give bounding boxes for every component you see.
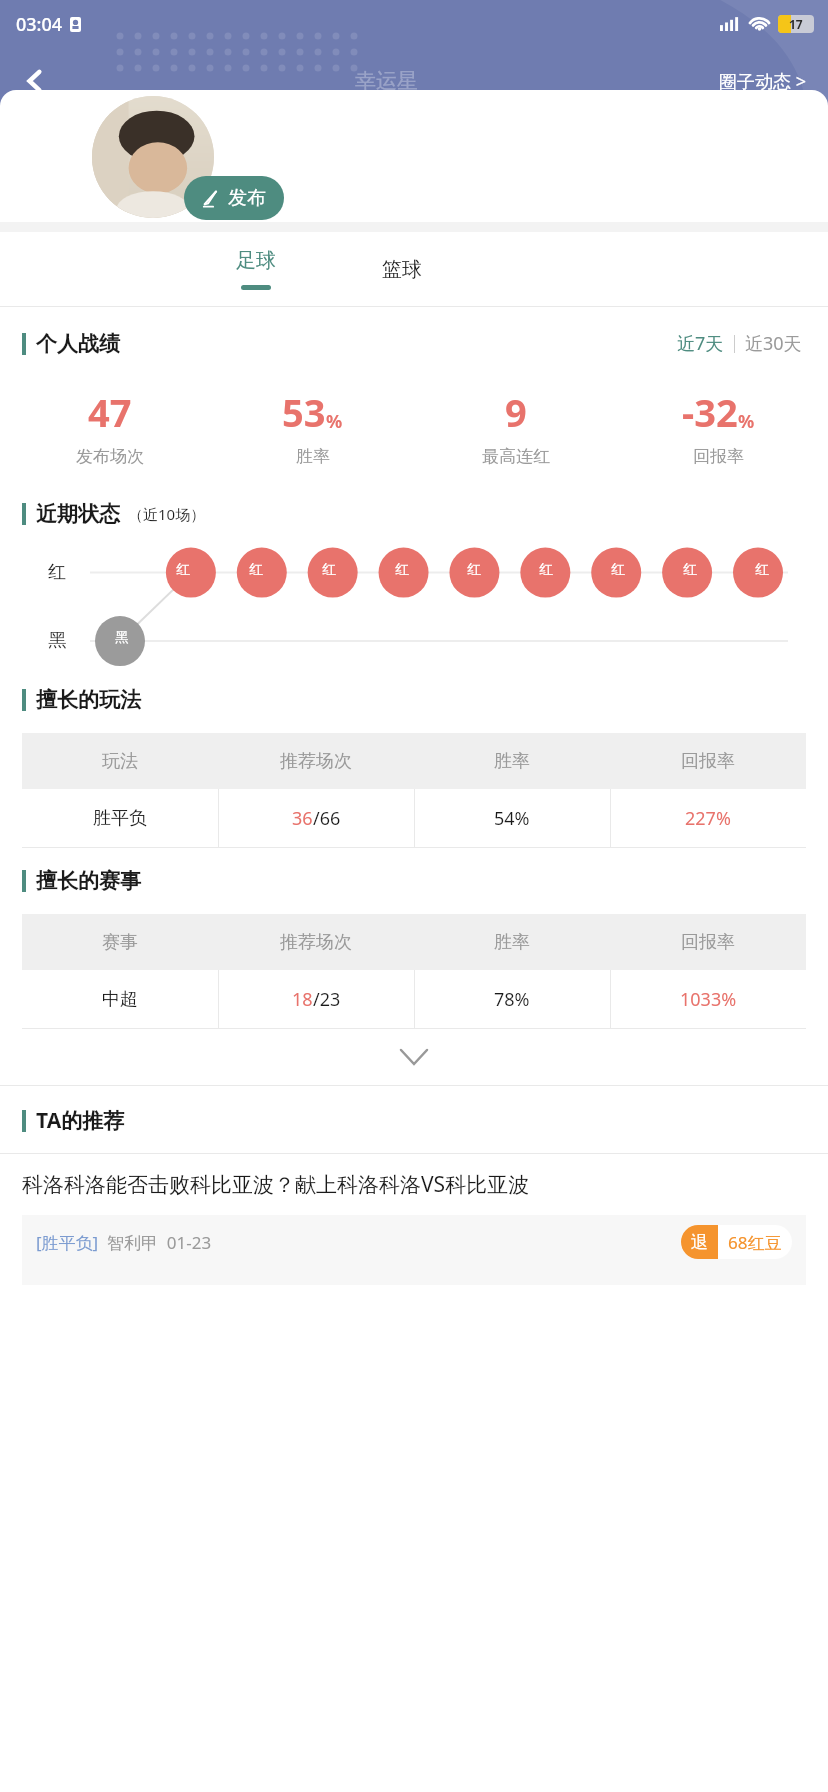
staticText: 近期状态 [36, 501, 120, 527]
button[interactable]: 近7天 [673, 327, 728, 360]
staticText: 擅长的赛事 [36, 868, 141, 894]
staticText: 退 [691, 1232, 708, 1253]
staticText: 推荐场次 [218, 931, 414, 954]
button[interactable]: 近30天 [741, 327, 806, 360]
staticText: 篮球 [382, 257, 422, 282]
button[interactable]: 科洛科洛能否击败科比亚波？献上科洛科洛VS科比亚波 [0, 1154, 828, 1301]
staticText: 发布场次 [76, 446, 144, 467]
staticText: 发布 [228, 186, 266, 210]
staticText: 红 [683, 561, 697, 579]
staticText: 近7天 [677, 331, 724, 356]
staticText: 17 [789, 16, 803, 32]
staticText: 54% [494, 806, 530, 831]
staticText: 红 [322, 561, 336, 579]
staticText: % [326, 409, 343, 434]
button[interactable]: 圈子动态 > [715, 65, 810, 98]
staticText: 赛事 [22, 931, 218, 954]
staticText: -32 [682, 386, 738, 438]
staticText: 最高连红 [482, 446, 550, 467]
staticText: 68红豆 [728, 1231, 782, 1254]
staticText: 红 [48, 561, 66, 584]
staticText: 红 [611, 561, 625, 579]
staticText: 红 [395, 561, 409, 579]
staticText: 黑 [48, 629, 66, 652]
staticText: 胜率 [414, 931, 610, 954]
staticText: % [738, 409, 755, 434]
staticText: 胜率 [296, 446, 330, 467]
staticText: 红 [755, 561, 769, 579]
staticText: 227% [685, 806, 731, 831]
staticText: 78% [494, 987, 530, 1012]
staticText: 科洛科洛能否击败科比亚波？献上科洛科洛VS科比亚波 [22, 1170, 530, 1199]
staticText: 胜率 [414, 750, 610, 773]
staticText: 红 [176, 561, 190, 579]
staticText: 玩法 [22, 750, 218, 773]
staticText: 黑 [115, 629, 129, 647]
staticText: 53 [282, 386, 326, 438]
staticText: 红 [539, 561, 553, 579]
staticText: 红 [249, 561, 263, 579]
button[interactable]: 展开更多 [0, 1029, 828, 1085]
staticText: 胜平负 [93, 807, 147, 830]
staticText: 回报率 [610, 931, 806, 954]
button[interactable]: 返回 [12, 58, 58, 104]
staticText: 推荐场次 [218, 750, 414, 773]
staticText: 擅长的玩法 [36, 687, 141, 713]
staticText: 智利甲 01-23 [107, 1231, 212, 1254]
staticText: [胜平负] [36, 1231, 99, 1254]
staticText: 36 [292, 806, 313, 831]
staticText: 47 [88, 386, 132, 438]
staticText: 红 [467, 561, 481, 579]
button[interactable]: 篮球 [368, 251, 436, 288]
staticText: 回报率 [693, 446, 744, 467]
button[interactable]: 发布 [184, 176, 284, 220]
staticText: 18 [292, 987, 313, 1012]
staticText: /23 [313, 987, 341, 1012]
staticText: TA的推荐 [36, 1106, 125, 1135]
staticText: 中超 [102, 988, 138, 1011]
staticText: （近10场） [128, 504, 206, 524]
staticText: 9 [505, 386, 527, 438]
staticText: 近30天 [745, 331, 802, 356]
staticText: 幸运星 [355, 68, 418, 94]
staticText: 圈子动态 > [719, 69, 806, 94]
staticText: 足球 [236, 248, 276, 273]
staticText: 个人战绩 [36, 331, 120, 357]
staticText: /66 [313, 806, 341, 831]
button[interactable]: 足球 [222, 242, 290, 296]
staticText: 03:04 [16, 12, 63, 37]
staticText: 回报率 [610, 750, 806, 773]
staticText: 1033% [680, 987, 737, 1012]
